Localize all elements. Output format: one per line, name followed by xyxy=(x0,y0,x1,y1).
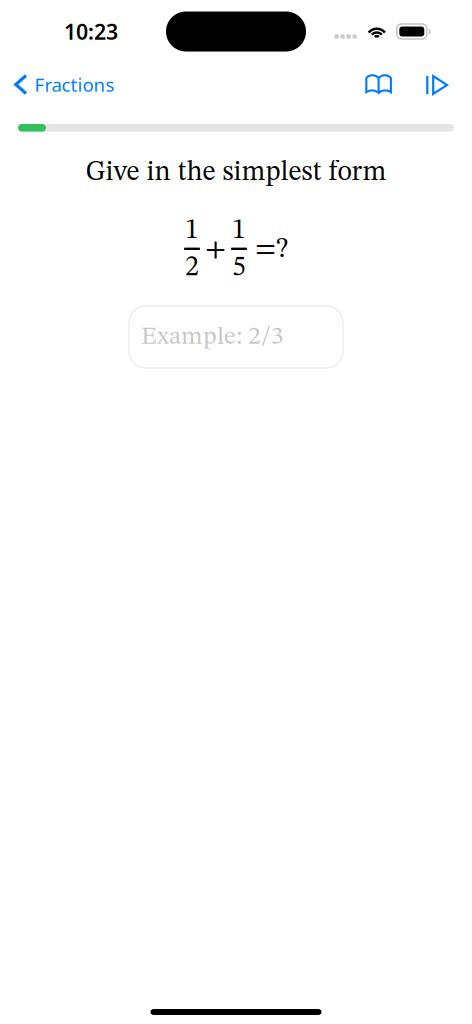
staticText: Example: 2/3 xyxy=(141,324,284,350)
staticText: 10:23 xyxy=(64,17,118,46)
button[interactable]: Fractions xyxy=(0,66,115,104)
staticText: 2 xyxy=(185,254,199,282)
staticText: 5 xyxy=(232,254,246,282)
button[interactable]: Restart xyxy=(418,68,456,102)
button[interactable]: Example: 2/3 xyxy=(129,306,343,368)
staticText: Give in the simplest form xyxy=(85,159,386,187)
staticText: Fractions xyxy=(35,72,115,97)
staticText: 1 xyxy=(185,217,199,245)
staticText: + xyxy=(205,235,226,264)
button[interactable]: Reference xyxy=(355,67,403,102)
staticText: 1 xyxy=(232,217,246,245)
staticText: =? xyxy=(255,235,288,264)
